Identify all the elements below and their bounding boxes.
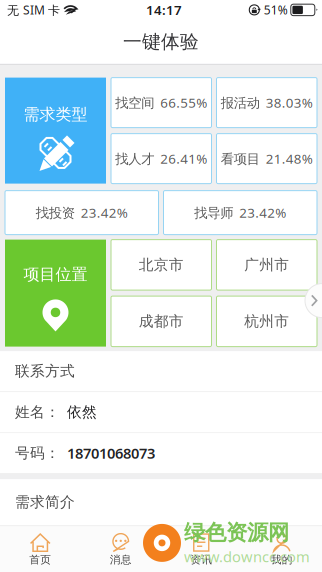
staticText: 依然 — [67, 403, 97, 421]
staticText: 资讯 — [190, 553, 212, 566]
button[interactable]: 找空间 66.55% — [111, 78, 211, 128]
staticText: 消息 — [110, 553, 132, 566]
staticText: 报活动 38.03% — [221, 94, 313, 111]
button[interactable]: 首页 — [0, 528, 80, 570]
button[interactable]: 北京市 — [111, 240, 211, 290]
staticText: 广州市 — [244, 256, 289, 274]
button[interactable]: 看项目 21.48% — [216, 134, 317, 184]
staticText: 51% — [264, 2, 288, 18]
staticText: 联系方式 — [15, 362, 75, 380]
button[interactable]: 找投资 23.42% — [5, 191, 158, 235]
staticText: 找空间 66.55% — [115, 94, 207, 111]
button[interactable]: 成都市 — [111, 296, 211, 347]
button[interactable]: 我的 — [241, 528, 322, 570]
staticText: 需求类型 — [23, 105, 87, 124]
staticText: 无 SIM 卡 — [7, 2, 60, 18]
button[interactable]: 消息 — [80, 528, 161, 570]
staticText: 成都市 — [139, 312, 184, 330]
button[interactable]: 报活动 38.03% — [216, 78, 317, 128]
staticText: 我的 — [271, 553, 293, 566]
button[interactable]: More — [305, 284, 322, 318]
staticText: www.downcc.com — [184, 547, 310, 566]
staticText: 首页 — [29, 553, 51, 566]
staticText: 北京市 — [139, 256, 184, 274]
staticText: 号码： — [15, 444, 60, 462]
staticText: 姓名： — [15, 403, 60, 421]
staticText: 一键体验 — [123, 30, 199, 53]
staticText: 杭州市 — [244, 312, 289, 330]
staticText: 找人才 26.41% — [115, 150, 207, 167]
staticText: 需求简介 — [15, 493, 75, 511]
staticText: 绿色资源网 — [184, 520, 289, 546]
button[interactable]: 资讯 — [161, 528, 241, 570]
staticText: 18701068073 — [67, 443, 155, 463]
button[interactable]: 找人才 26.41% — [111, 134, 211, 184]
button[interactable]: 杭州市 — [216, 296, 317, 347]
staticText: 看项目 21.48% — [221, 150, 313, 167]
staticText: 14:17 — [146, 1, 182, 19]
button[interactable]: 找导师 23.42% — [163, 191, 317, 235]
staticText: 找投资 23.42% — [36, 204, 128, 221]
staticText: 找导师 23.42% — [194, 204, 286, 221]
staticText: 项目位置 — [23, 265, 87, 284]
button[interactable]: 广州市 — [216, 240, 317, 290]
